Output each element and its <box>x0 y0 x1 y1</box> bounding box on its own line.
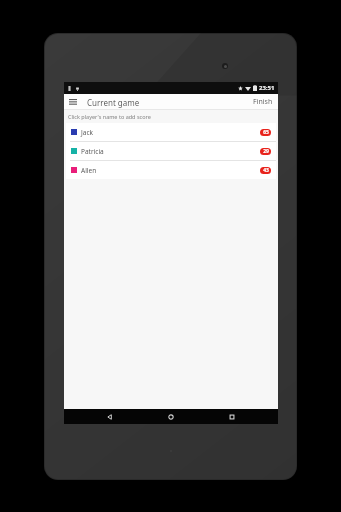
button[interactable]: Patricia <box>66 142 276 160</box>
button[interactable]: Allen <box>66 161 276 179</box>
staticText: Patricia <box>81 147 104 156</box>
button[interactable]: Home <box>156 409 186 424</box>
staticText: Finish <box>253 97 273 107</box>
button[interactable]: Back <box>95 409 125 424</box>
staticText: 43 <box>263 167 269 174</box>
staticText: Click player's name to add score <box>68 113 151 120</box>
button[interactable]: Jack <box>66 123 276 141</box>
staticText: Allen <box>81 166 97 175</box>
button[interactable]: Open navigation drawer <box>66 95 80 109</box>
staticText: Current game <box>87 97 140 108</box>
button[interactable]: Finish <box>248 94 278 110</box>
staticText: 29 <box>263 148 269 155</box>
button[interactable]: Recent apps <box>217 409 247 424</box>
staticText: 65 <box>263 129 269 136</box>
staticText: Jack <box>81 128 94 137</box>
staticText: 23:51 <box>259 84 275 92</box>
